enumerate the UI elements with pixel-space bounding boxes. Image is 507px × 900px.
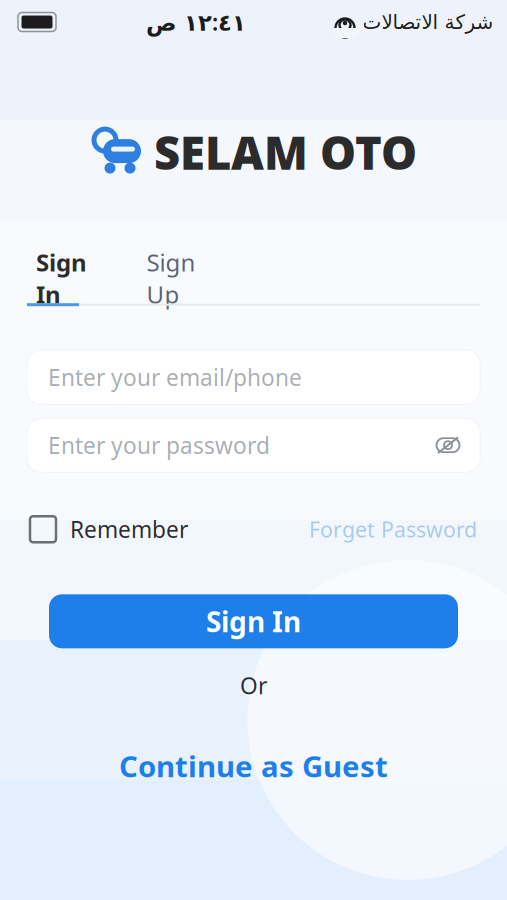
staticText: Forget Password [309, 515, 477, 543]
staticText: Or [240, 670, 267, 700]
staticText: Sign Up [146, 246, 195, 310]
staticText: شركة الاتصالات [362, 11, 493, 33]
staticText: Enter your password [48, 430, 270, 460]
button[interactable]: Sign In [25, 264, 98, 292]
staticText: Enter your email/phone [48, 362, 302, 392]
button[interactable]: Show password [428, 425, 468, 465]
button[interactable]: Forget Password [309, 509, 477, 549]
button[interactable]: Continue as Guest [101, 738, 406, 793]
staticText: ١٢:٤١ ص [145, 7, 245, 37]
staticText: SELAM OTO [154, 122, 417, 182]
staticText: Sign In [206, 603, 301, 640]
button[interactable]: Sign Up [133, 264, 209, 292]
button[interactable]: Sign In [49, 594, 458, 648]
staticText: Remember [70, 514, 188, 544]
button[interactable]: Remember [30, 508, 188, 550]
staticText: Continue as Guest [119, 746, 388, 785]
staticText: Sign In [36, 246, 87, 310]
